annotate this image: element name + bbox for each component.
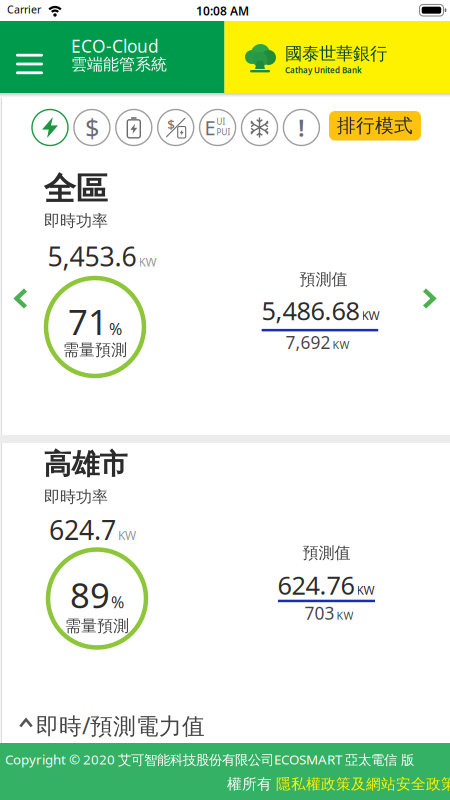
button[interactable]: 上一頁 [10,284,32,313]
staticText: 5,453.6 [47,238,136,274]
button[interactable]: 單位電費 [158,109,194,145]
staticText: PUI [217,127,231,137]
staticText: KW [332,338,349,352]
button[interactable]: Menu [6,35,53,75]
staticText: Copyright © 2020 艾可智能科技股份有限公司ECOSMART 亞太… [5,750,414,768]
staticText: 89 [70,572,110,618]
staticText: 國泰世華銀行 [285,43,387,64]
button[interactable]: 用電量 [116,109,152,145]
staticText: $ [167,115,175,133]
staticText: 排行模式 [337,114,413,137]
staticText: % [111,591,124,612]
button[interactable]: 即時/預測電力值 [0,706,235,745]
staticText: E [205,114,216,141]
staticText: 高雄市 [43,447,127,481]
button[interactable]: 空調 [241,109,277,145]
staticText: KW [336,608,353,623]
staticText: % [109,318,122,339]
staticText: 雲端能管系統 [71,54,167,74]
staticText: 即時功率 [44,211,108,231]
staticText: 即時/預測電力值 [36,710,205,741]
staticText: ! [298,112,305,143]
staticText: KW [118,527,136,543]
button[interactable]: 隱私權政策及網站安全政策 [276,775,450,793]
staticText: 權所有 [227,775,276,793]
button[interactable]: 排行模式 [329,111,421,140]
staticText: 10:08 AM [196,3,249,19]
staticText: $ [85,111,99,144]
staticText: KW [356,582,374,598]
staticText: 703 [304,601,334,624]
button[interactable]: 電費 [74,109,110,145]
button[interactable]: 下一頁 [418,284,440,313]
staticText: 預測值 [302,543,350,563]
staticText: 5,486.68 [262,293,360,327]
staticText: 624.7 [49,512,116,547]
staticText: ECO-Cloud [71,34,159,57]
staticText: 7,692 [285,331,330,354]
staticText: 即時功率 [44,487,108,507]
button[interactable]: 警報 [283,109,319,145]
button[interactable]: 國泰世華銀行 [245,43,387,75]
staticText: 隱私權政策及網站安全政策 [276,775,450,793]
button[interactable]: EUI PUI [200,109,236,145]
staticText: 71 [68,298,108,344]
staticText: 需量預測 [65,616,129,636]
staticText: 預測值 [299,269,347,289]
staticText: UI [217,116,226,127]
button[interactable]: 即時功率 [32,109,68,145]
staticText: KW [362,307,380,323]
staticText: 需量預測 [63,340,127,360]
staticText: 624.76 [277,568,354,602]
staticText: Cathay United Bank [285,65,362,75]
staticText: 全區 [44,169,108,209]
staticText: KW [138,254,156,270]
staticText: Carrier [7,2,41,16]
